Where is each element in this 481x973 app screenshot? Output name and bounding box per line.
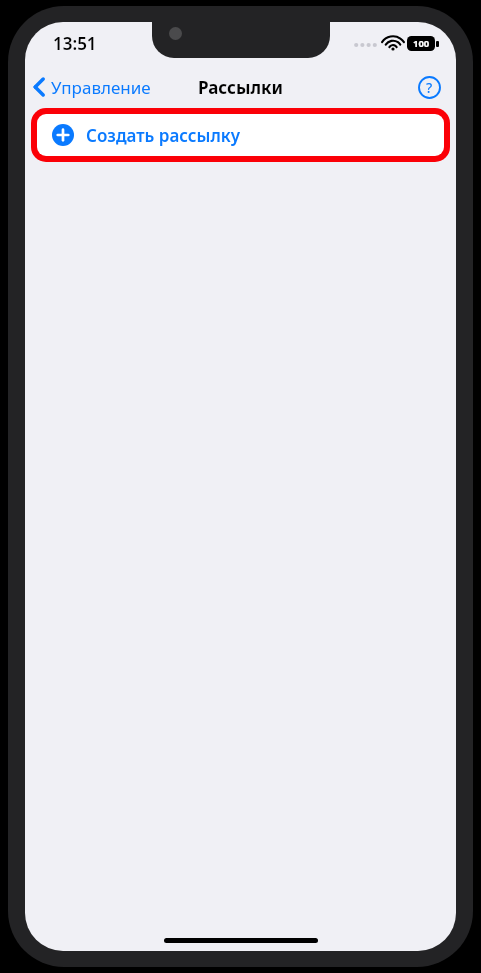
- button[interactable]: Создать рассылку: [37, 114, 444, 156]
- staticText: ?: [426, 78, 433, 97]
- staticText: Рассылки: [198, 76, 283, 99]
- staticText: Создать рассылку: [86, 124, 240, 147]
- button[interactable]: Help: [412, 70, 446, 104]
- staticText: 100: [413, 37, 430, 50]
- button[interactable]: Управление: [25, 68, 161, 106]
- staticText: Управление: [51, 76, 151, 99]
- staticText: 13:51: [53, 32, 97, 55]
